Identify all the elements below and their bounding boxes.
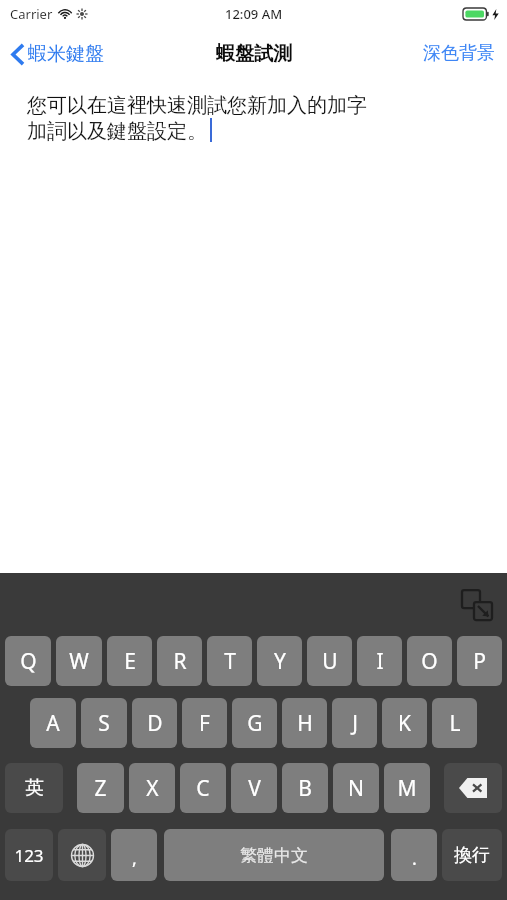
staticText: 加詞以及鍵盤設定。 — [27, 119, 207, 144]
staticText: L — [449, 709, 461, 738]
staticText: S — [98, 709, 110, 738]
staticText: Carrier — [10, 5, 53, 23]
button[interactable]: W — [56, 636, 102, 686]
staticText: Y — [274, 647, 286, 676]
button[interactable]: , — [111, 829, 157, 881]
button[interactable]: V — [231, 763, 277, 813]
button[interactable]: 繁體中文 — [164, 829, 384, 881]
button[interactable]: I — [357, 636, 402, 686]
staticText: K — [398, 709, 411, 738]
staticText: 深色背景 — [423, 42, 495, 65]
staticText: . — [412, 846, 417, 871]
button[interactable]: K — [382, 698, 427, 748]
staticText: P — [473, 647, 486, 676]
staticText: U — [322, 647, 338, 676]
button[interactable]: R — [157, 636, 202, 686]
button[interactable]: 英 — [5, 763, 63, 813]
staticText: N — [348, 774, 364, 803]
button[interactable]: 換行 — [442, 829, 502, 881]
button[interactable]: 蝦米鍵盤 — [0, 36, 114, 72]
staticText: , — [132, 846, 137, 871]
staticText: J — [352, 709, 358, 738]
button[interactable]: Switch keyboard layout — [455, 583, 499, 627]
button[interactable]: T — [207, 636, 252, 686]
button[interactable]: U — [307, 636, 352, 686]
staticText: C — [196, 774, 210, 803]
staticText: W — [69, 647, 89, 676]
staticText: G — [247, 709, 263, 738]
staticText: 英 — [25, 776, 44, 800]
staticText: E — [124, 647, 136, 676]
button[interactable]: 123 — [5, 829, 53, 881]
staticText: H — [297, 709, 313, 738]
button[interactable]: M — [384, 763, 430, 813]
button[interactable]: B — [282, 763, 328, 813]
staticText: Q — [20, 647, 37, 676]
staticText: A — [46, 709, 60, 738]
staticText: 換行 — [454, 844, 490, 867]
staticText: O — [421, 647, 438, 676]
button[interactable]: E — [107, 636, 152, 686]
staticText: B — [298, 774, 312, 803]
button[interactable]: O — [407, 636, 452, 686]
button[interactable]: F — [182, 698, 227, 748]
staticText: I — [376, 647, 384, 676]
staticText: 您可以在這裡快速測試您新加入的加字 — [27, 93, 367, 118]
staticText: 123 — [14, 844, 44, 867]
button[interactable]: X — [129, 763, 175, 813]
staticText: T — [224, 647, 236, 676]
staticText: 蝦米鍵盤 — [28, 42, 104, 66]
button[interactable]: J — [332, 698, 377, 748]
button[interactable]: Z — [77, 763, 124, 813]
staticText: X — [146, 774, 159, 803]
staticText: V — [248, 774, 261, 803]
staticText: 蝦盤試測 — [216, 42, 292, 66]
button[interactable]: D — [132, 698, 177, 748]
button[interactable]: A — [30, 698, 76, 748]
button[interactable]: Backspace — [444, 763, 502, 813]
button[interactable]: N — [333, 763, 379, 813]
button[interactable]: L — [432, 698, 477, 748]
button[interactable]: 您可以在這裡快速測試您新加入的加字 — [0, 79, 507, 573]
button[interactable]: P — [457, 636, 502, 686]
button[interactable]: . — [391, 829, 437, 881]
button[interactable]: H — [282, 698, 327, 748]
staticText: R — [173, 647, 187, 676]
button[interactable]: Change language — [58, 829, 106, 881]
button[interactable]: Y — [257, 636, 302, 686]
button[interactable]: 深色背景 — [411, 34, 507, 73]
staticText: M — [397, 774, 417, 803]
button[interactable]: S — [81, 698, 127, 748]
button[interactable]: G — [232, 698, 277, 748]
button[interactable]: Q — [5, 636, 51, 686]
staticText: Z — [94, 774, 107, 803]
staticText: F — [199, 709, 210, 738]
staticText: D — [147, 709, 163, 738]
button[interactable]: C — [180, 763, 226, 813]
staticText: 12:09 AM — [225, 5, 283, 23]
staticText: 繁體中文 — [240, 845, 308, 866]
